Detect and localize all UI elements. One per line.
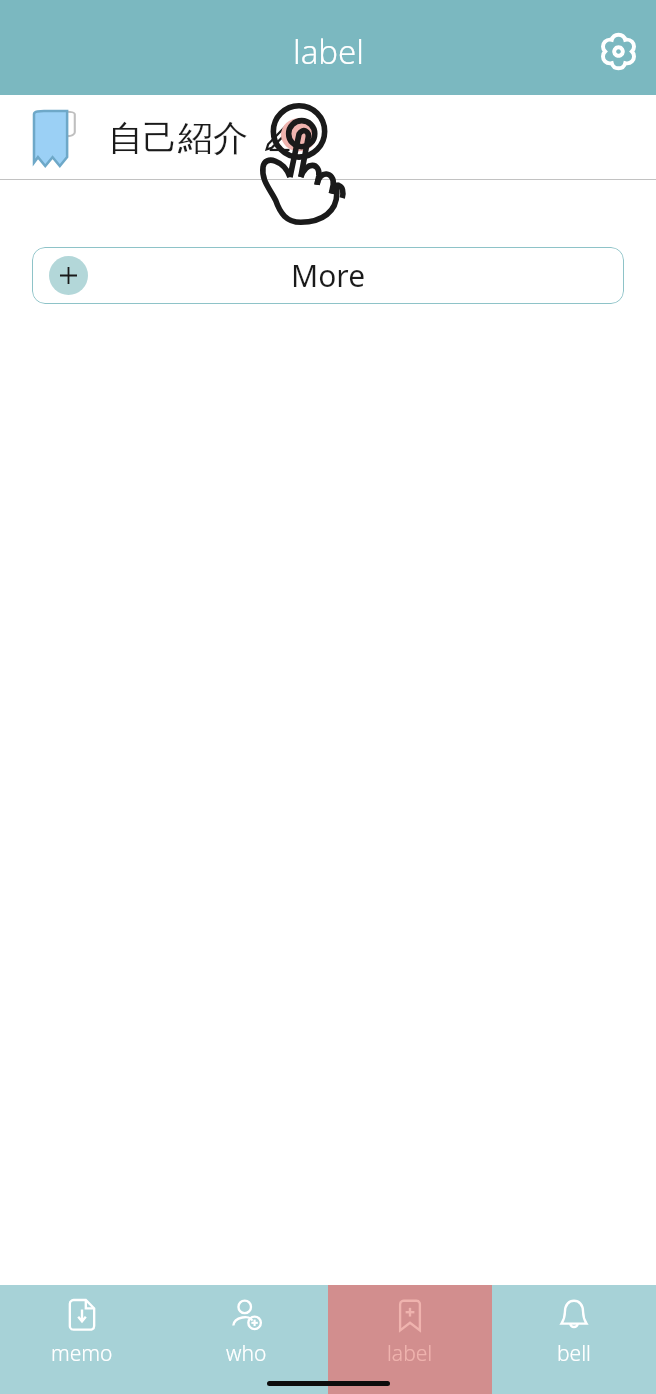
staticText: 自己紹介 bbox=[108, 116, 248, 160]
staticText: memo bbox=[51, 1339, 113, 1368]
button[interactable]: 自己紹介 bbox=[0, 96, 656, 179]
staticText: More bbox=[291, 255, 366, 296]
button[interactable]: More bbox=[32, 247, 624, 304]
staticText: bell bbox=[557, 1339, 591, 1368]
button[interactable]: Settings bbox=[594, 27, 642, 75]
button[interactable]: memo bbox=[0, 1285, 164, 1394]
button[interactable]: who bbox=[164, 1285, 328, 1394]
staticText: label bbox=[387, 1339, 433, 1368]
button[interactable]: bell bbox=[492, 1285, 656, 1394]
button[interactable]: Edit bbox=[260, 121, 294, 155]
staticText: label bbox=[293, 29, 364, 74]
other: Tap here bbox=[254, 110, 344, 220]
staticText: who bbox=[226, 1339, 267, 1368]
button[interactable]: label bbox=[328, 1285, 492, 1394]
